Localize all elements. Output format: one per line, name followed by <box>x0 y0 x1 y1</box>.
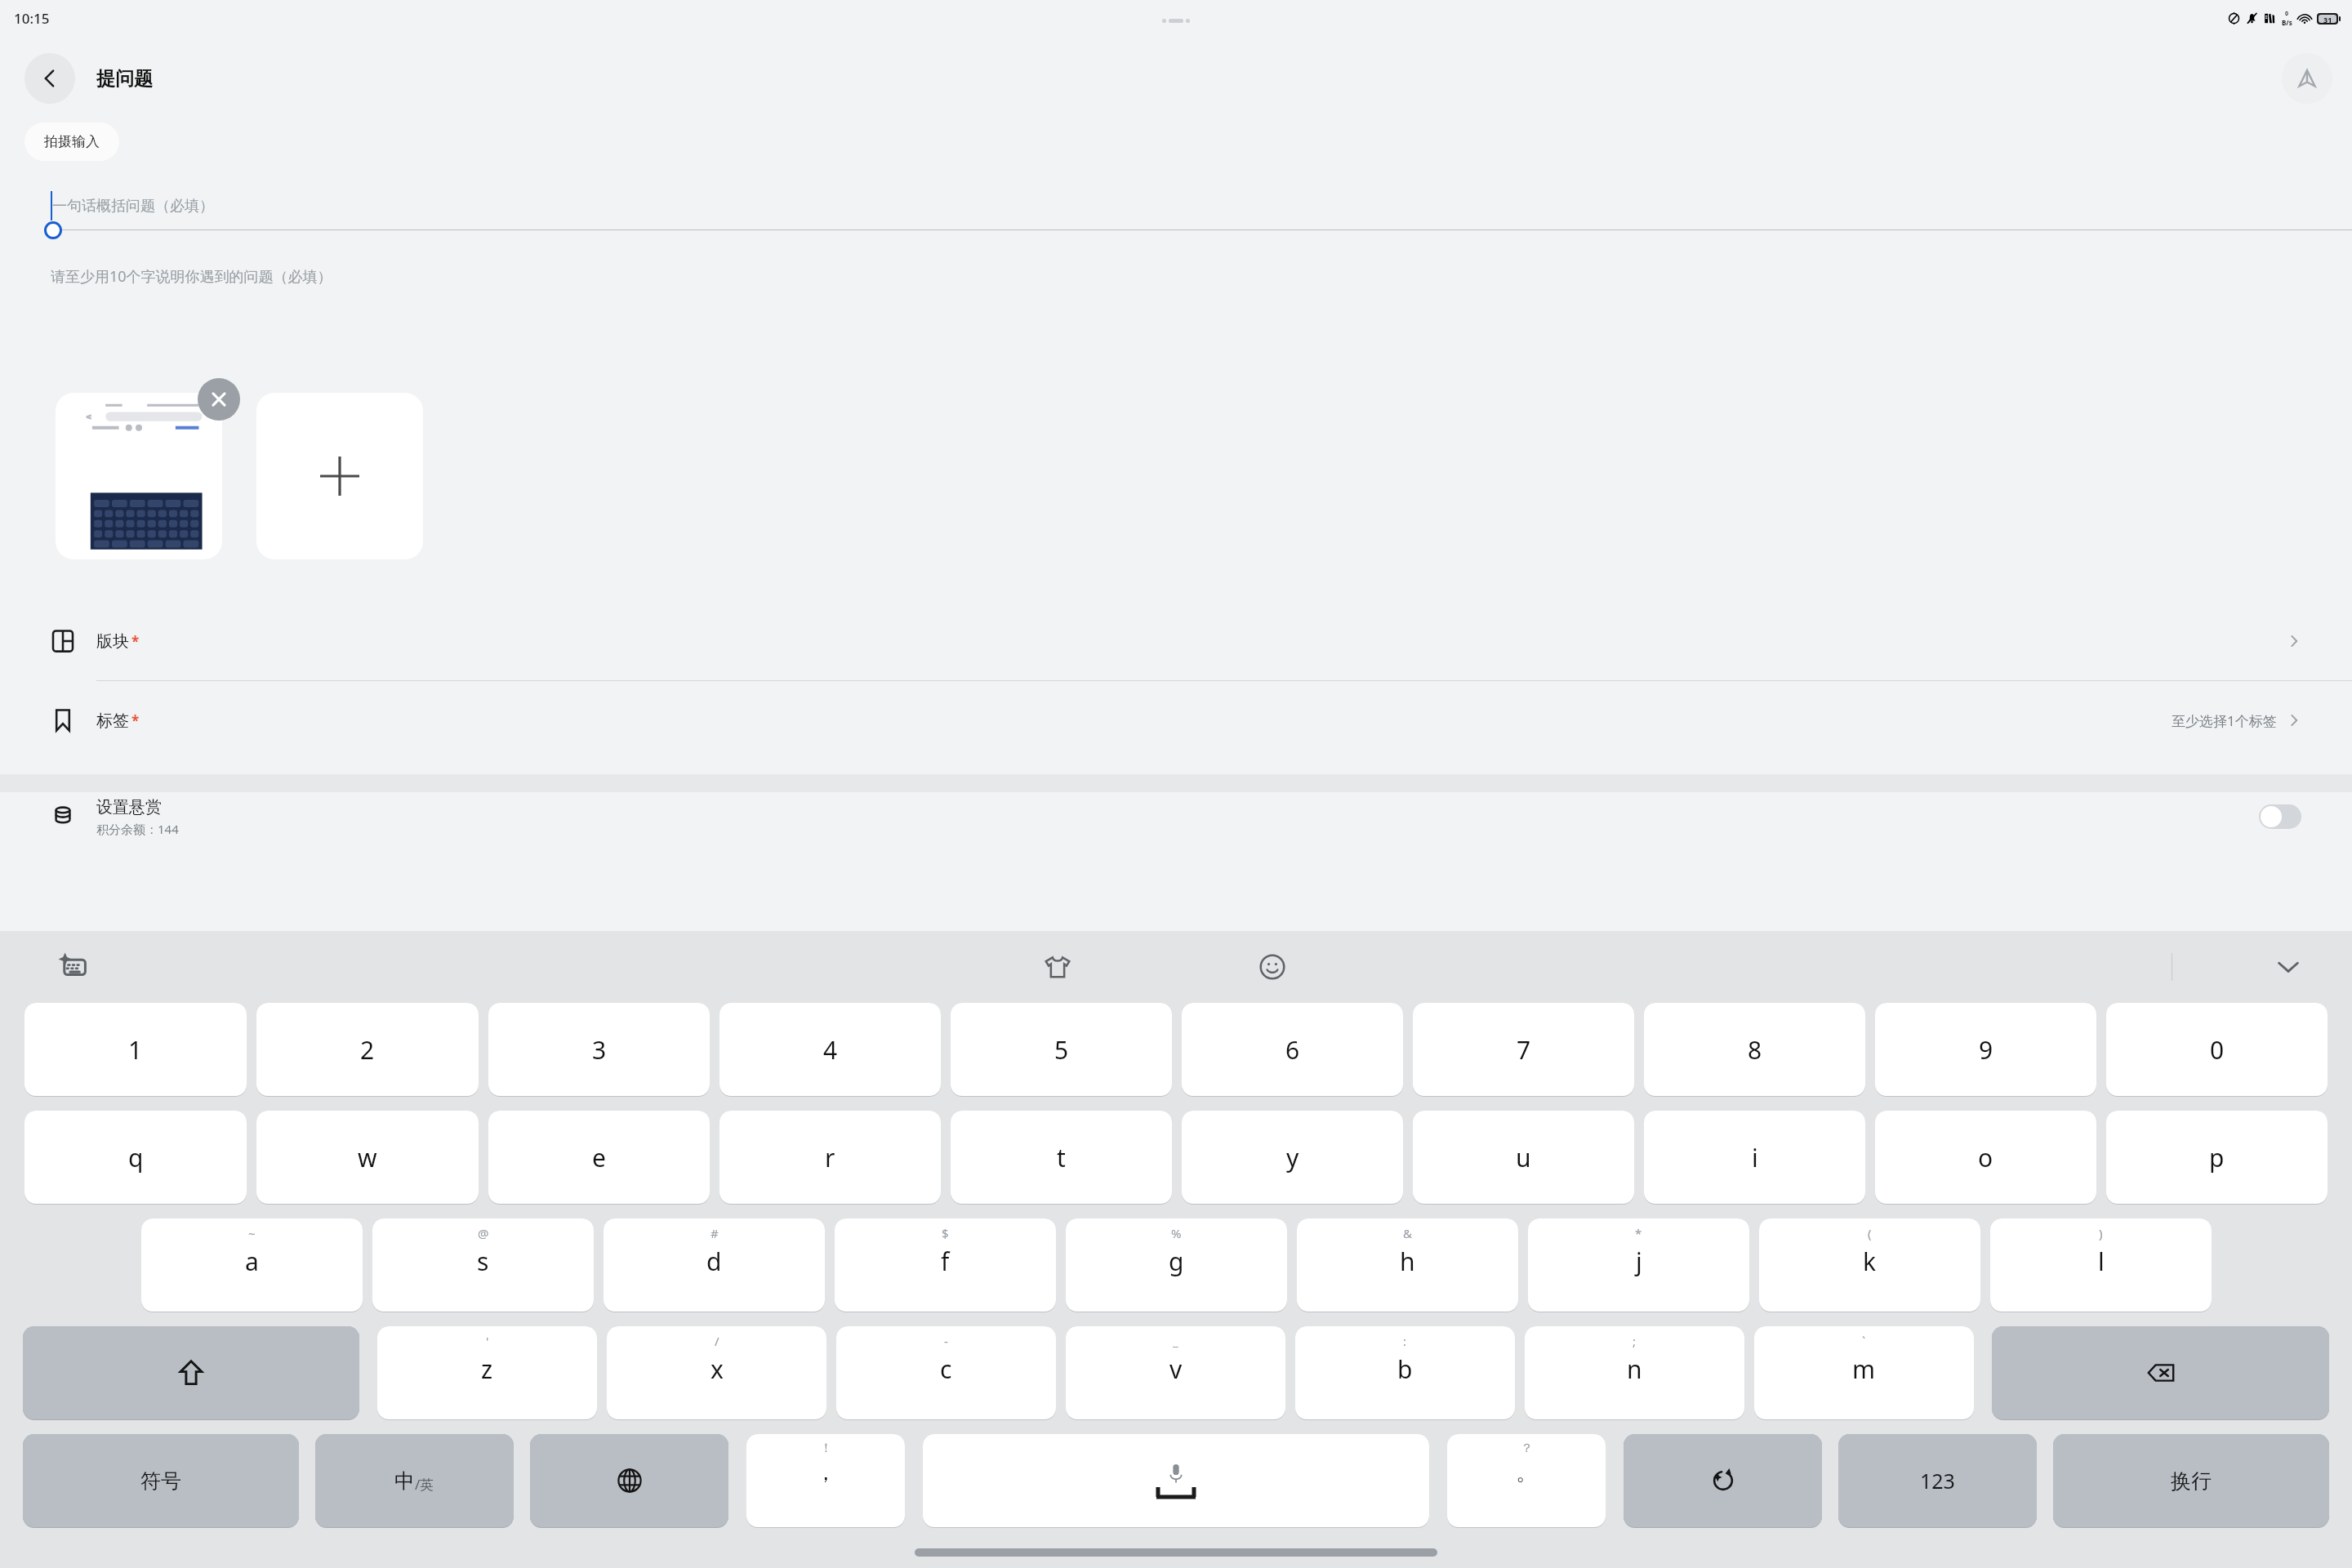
staticText: : <box>1403 1333 1407 1349</box>
button[interactable]: / <box>607 1326 826 1419</box>
button[interactable]: _ <box>1066 1326 1285 1419</box>
staticText: k <box>1863 1245 1877 1278</box>
button[interactable]: 4 <box>719 1003 941 1096</box>
button[interactable]: ( <box>1759 1218 1980 1312</box>
button[interactable]: Hide keyboard <box>2267 946 2310 988</box>
button[interactable] <box>23 1326 359 1419</box>
button[interactable]: q <box>24 1111 247 1204</box>
button[interactable]: Theme <box>1036 946 1079 988</box>
button[interactable]: 1 <box>24 1003 247 1096</box>
button[interactable]: # <box>604 1218 825 1312</box>
staticText: 请至少用10个字说明你遇到的问题（必填） <box>51 266 332 287</box>
staticText: 4 <box>823 1033 838 1067</box>
button[interactable]: : <box>1295 1326 1515 1419</box>
button[interactable]: 3 <box>488 1003 710 1096</box>
staticText: 标签 <box>96 710 129 731</box>
button[interactable]: & <box>1297 1218 1518 1312</box>
staticText: * <box>131 632 140 651</box>
button[interactable] <box>1624 1434 1822 1527</box>
button[interactable]: % <box>1066 1218 1287 1312</box>
button[interactable]: e <box>488 1111 710 1204</box>
button[interactable] <box>56 393 222 559</box>
staticText: ~ <box>248 1225 256 1241</box>
button[interactable]: w <box>256 1111 479 1204</box>
staticText: e <box>592 1141 606 1174</box>
staticText: 2 <box>360 1033 375 1067</box>
staticText: % <box>1171 1225 1182 1241</box>
staticText: 拍摄输入 <box>44 133 100 150</box>
button[interactable]: 5 <box>951 1003 1172 1096</box>
button[interactable]: ？ <box>1447 1434 1606 1527</box>
button[interactable]: 拍摄输入 <box>24 122 119 161</box>
button[interactable]: 9 <box>1875 1003 2096 1096</box>
staticText: 9 <box>1979 1033 1993 1067</box>
button[interactable]: Add image <box>256 393 423 559</box>
button[interactable]: Emoji <box>1251 946 1294 988</box>
button[interactable]: 中 <box>315 1434 514 1527</box>
staticText: ？ <box>1521 1441 1533 1456</box>
button[interactable]: ` <box>1754 1326 1974 1419</box>
staticText: 。 <box>1516 1459 1537 1486</box>
staticText: 7 <box>1517 1033 1531 1067</box>
staticText: a <box>245 1245 259 1278</box>
staticText: w <box>358 1141 377 1174</box>
button[interactable]: 符号 <box>23 1434 299 1527</box>
button[interactable]: Back <box>24 53 75 104</box>
button[interactable]: ) <box>1990 1218 2212 1312</box>
button[interactable]: i <box>1644 1111 1865 1204</box>
staticText: i <box>1752 1141 1758 1174</box>
button[interactable]: 设置悬赏 <box>0 792 2352 841</box>
button[interactable]: * <box>1528 1218 1749 1312</box>
button[interactable]: ' <box>377 1326 597 1419</box>
staticText: 3 <box>592 1033 607 1067</box>
button[interactable]: 123 <box>1838 1434 2037 1527</box>
button[interactable]: y <box>1182 1111 1403 1204</box>
staticText: x <box>710 1352 724 1386</box>
staticText: h <box>1400 1245 1415 1278</box>
button[interactable]: 换行 <box>2053 1434 2329 1527</box>
button[interactable]: 7 <box>1413 1003 1634 1096</box>
button[interactable]: r <box>719 1111 941 1204</box>
staticText: d <box>706 1245 722 1278</box>
button[interactable]: 0 <box>2106 1003 2327 1096</box>
button[interactable]: Space <box>923 1434 1429 1527</box>
button[interactable]: 标签 <box>0 681 2352 759</box>
button[interactable]: 版块 <box>0 602 2352 680</box>
staticText: ， <box>815 1459 836 1486</box>
staticText: g <box>1169 1245 1184 1278</box>
button[interactable]: @ <box>372 1218 594 1312</box>
staticText: ` <box>1862 1333 1866 1349</box>
button[interactable] <box>1992 1326 2329 1419</box>
button[interactable]: Remove image <box>198 378 240 421</box>
button[interactable]: Send <box>2282 53 2332 104</box>
staticText: 版块 <box>96 631 129 652</box>
staticText: ( <box>1868 1225 1872 1241</box>
button[interactable]: t <box>951 1111 1172 1204</box>
staticText: b <box>1397 1352 1413 1386</box>
button[interactable]: Toggle bounty <box>2259 804 2301 829</box>
staticText: l <box>2098 1245 2105 1278</box>
button[interactable]: o <box>1875 1111 2096 1204</box>
button[interactable]: 6 <box>1182 1003 1403 1096</box>
staticText: 123 <box>1920 1467 1955 1494</box>
staticText: 设置悬赏 <box>96 797 162 817</box>
button[interactable]: u <box>1413 1111 1634 1204</box>
staticText: r <box>825 1141 835 1174</box>
button[interactable]: 2 <box>256 1003 479 1096</box>
button[interactable]: $ <box>835 1218 1056 1312</box>
staticText: / <box>715 1333 719 1349</box>
button[interactable]: ！ <box>746 1434 905 1527</box>
button[interactable]: ; <box>1525 1326 1744 1419</box>
button[interactable]: 8 <box>1644 1003 1865 1096</box>
button[interactable] <box>530 1434 728 1527</box>
staticText: c <box>940 1352 952 1386</box>
staticText: 符号 <box>140 1468 181 1494</box>
button[interactable]: AI keyboard <box>52 946 95 988</box>
staticText: u <box>1516 1141 1531 1174</box>
staticText: 31 <box>2323 15 2332 23</box>
staticText: 1 <box>128 1033 143 1067</box>
button[interactable]: - <box>836 1326 1056 1419</box>
button[interactable]: ~ <box>141 1218 363 1312</box>
button[interactable]: p <box>2106 1111 2327 1204</box>
staticText: 6 <box>1285 1033 1300 1067</box>
